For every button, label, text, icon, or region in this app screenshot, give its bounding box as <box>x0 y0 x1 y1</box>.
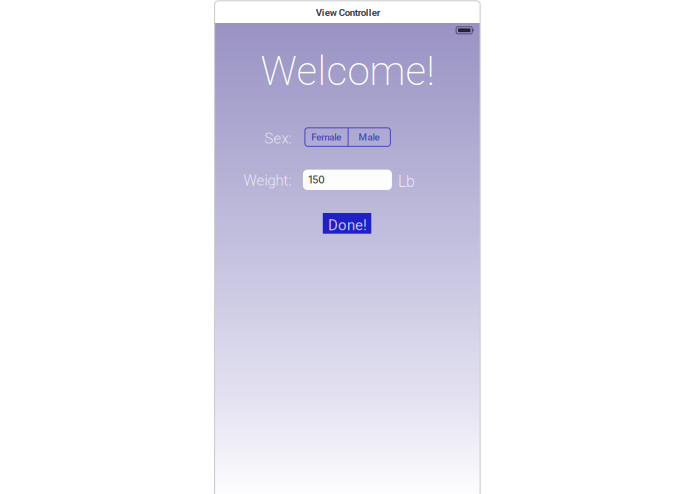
button[interactable]: Male <box>348 128 390 146</box>
button[interactable]: Female <box>305 128 348 146</box>
staticText: Lb <box>398 172 415 191</box>
staticText: 150 <box>308 174 324 186</box>
staticText: Sex: <box>265 130 292 147</box>
staticText: View Controller <box>316 7 381 18</box>
button[interactable]: Done! <box>323 213 371 234</box>
staticText: Welcome! <box>261 48 435 95</box>
staticText: Weight: <box>243 172 291 189</box>
staticText: Done! <box>328 216 367 234</box>
staticText: Female <box>311 131 341 143</box>
staticText: Male <box>358 131 379 143</box>
